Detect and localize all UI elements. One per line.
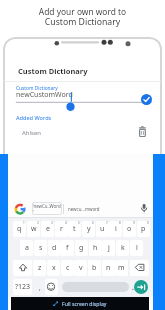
staticText: 3 (51, 221, 53, 225)
staticText: x (52, 263, 56, 273)
staticText: Added Words (16, 114, 52, 122)
staticText: i (115, 224, 117, 234)
staticText: newcu...mword (68, 206, 100, 212)
button[interactable]: l (130, 240, 143, 256)
staticText: 0 (147, 221, 149, 225)
button[interactable]: v (74, 260, 87, 276)
button[interactable]: y (82, 221, 95, 237)
button[interactable]: a (20, 240, 33, 256)
button[interactable]: . (130, 279, 136, 295)
staticText: r (60, 224, 63, 234)
button[interactable]: m (115, 260, 128, 276)
staticText: Custom Dictionary (0, 16, 165, 28)
button[interactable]: “newCu..Word” (32, 202, 62, 215)
staticText: Full screen display (62, 300, 107, 307)
staticText: n (106, 263, 111, 273)
button[interactable]: w (27, 221, 40, 237)
button[interactable]: f (61, 240, 74, 256)
staticText: newCustomWord (16, 90, 73, 100)
button[interactable]: u (96, 221, 109, 237)
button[interactable] (62, 282, 129, 292)
staticText: z (38, 263, 42, 273)
staticText: q (17, 224, 22, 234)
button[interactable]: t (68, 221, 81, 237)
button[interactable] (134, 280, 148, 294)
staticText: Add your own word to (0, 6, 165, 17)
button[interactable] (45, 279, 58, 295)
staticText: 6 (92, 221, 94, 225)
staticText: j (108, 243, 110, 253)
button[interactable]: o (123, 221, 136, 237)
staticText: ?123 (15, 282, 31, 292)
staticText: Ahlsen (22, 129, 42, 137)
staticText: 5 (78, 221, 80, 225)
staticText: Custom Dictionary (18, 66, 88, 76)
button[interactable]: r (55, 221, 68, 237)
button[interactable]: c (61, 260, 74, 276)
button[interactable]: Full screen display (11, 297, 149, 310)
staticText: b (92, 263, 97, 273)
staticText: h (93, 243, 98, 253)
staticText: 2 (37, 221, 39, 225)
staticText: w (31, 224, 37, 234)
staticText: y (87, 224, 91, 234)
staticText: Custom Dictionary (16, 85, 58, 92)
button[interactable]: j (102, 240, 115, 256)
staticText: . (132, 283, 134, 292)
button[interactable]: g (75, 240, 88, 256)
staticText: “newCu..Word” (32, 203, 62, 215)
staticText: , (39, 283, 41, 292)
button[interactable]: h (89, 240, 102, 256)
staticText: v (79, 263, 83, 273)
button[interactable] (13, 260, 32, 276)
button[interactable]: k (116, 240, 129, 256)
staticText: 7 (106, 221, 108, 225)
button[interactable]: n (102, 260, 115, 276)
staticText: k (121, 243, 125, 253)
button[interactable]: d (48, 240, 61, 256)
button[interactable]: e (41, 221, 54, 237)
button[interactable]: i (109, 221, 122, 237)
button[interactable]: z (33, 260, 46, 276)
staticText: a (25, 243, 29, 253)
staticText: l (136, 243, 138, 253)
button[interactable]: , (34, 279, 45, 295)
button[interactable]: b (88, 260, 101, 276)
button[interactable]: p (137, 221, 150, 237)
button[interactable]: s (34, 240, 47, 256)
button[interactable]: ?123 (13, 279, 32, 295)
staticText: e (46, 224, 50, 234)
staticText: d (52, 243, 57, 253)
staticText: 1 (23, 221, 25, 225)
staticText: u (100, 224, 105, 234)
staticText: m (118, 263, 125, 273)
staticText: c (66, 263, 70, 273)
staticText: f (66, 243, 69, 253)
staticText: o (127, 224, 132, 234)
button[interactable]: x (47, 260, 60, 276)
staticText: 4 (65, 221, 67, 225)
staticText: 9 (133, 221, 135, 225)
staticText: 8 (119, 221, 121, 225)
staticText: t (73, 224, 76, 234)
staticText: p (141, 224, 146, 234)
staticText: g (79, 243, 84, 253)
button[interactable]: newcu...mword (64, 202, 104, 215)
button[interactable] (16, 126, 148, 139)
button[interactable]: q (13, 221, 26, 237)
button[interactable] (141, 94, 152, 105)
button[interactable] (130, 260, 149, 276)
staticText: s (39, 243, 43, 253)
